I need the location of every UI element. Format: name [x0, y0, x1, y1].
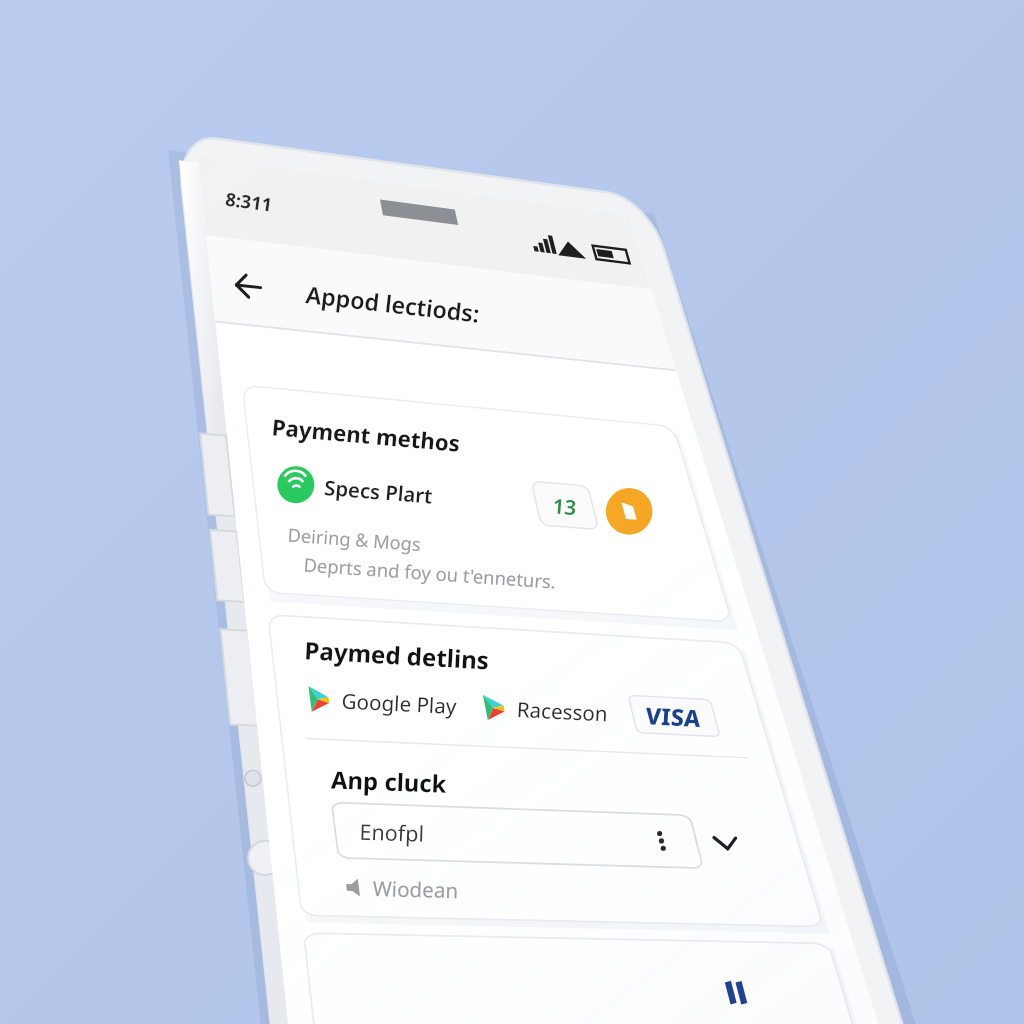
- button[interactable]: App settings screen: [0, 0, 1024, 1024]
